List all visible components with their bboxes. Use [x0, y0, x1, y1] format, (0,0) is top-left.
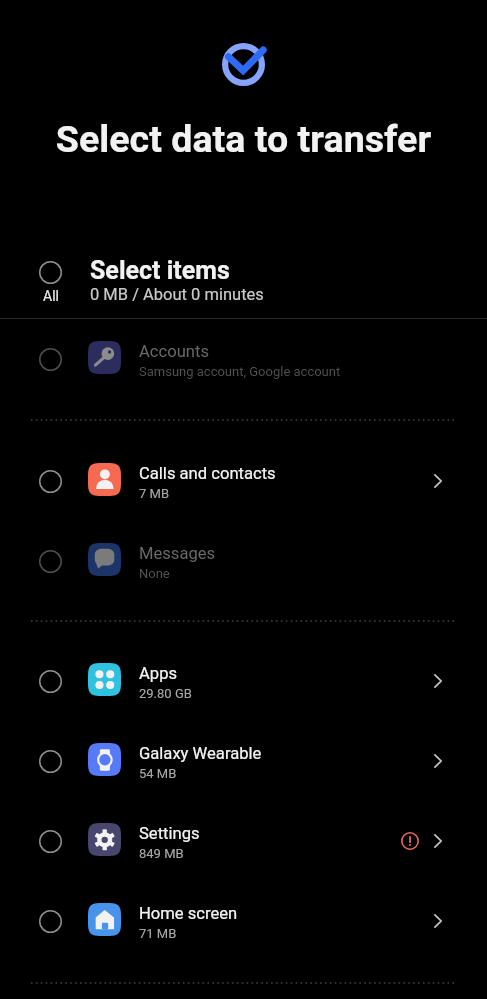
staticText: 29.80 GB — [139, 686, 192, 701]
other: Select Accounts — [39, 348, 62, 371]
button[interactable]: Select Apps — [0, 641, 487, 721]
staticText: Apps — [139, 664, 178, 683]
other: Open details — [427, 910, 449, 932]
staticText: 54 MB — [139, 766, 177, 781]
other: Select Apps — [39, 670, 62, 693]
staticText: All — [43, 288, 59, 304]
other: Select Messages — [39, 550, 62, 573]
staticText: Calls and contacts — [139, 464, 276, 483]
button[interactable]: Select Settings — [0, 801, 487, 881]
other: Open details — [427, 470, 449, 492]
staticText: 0 MB / About 0 minutes — [90, 285, 264, 304]
staticText: 7 MB — [139, 486, 169, 501]
staticText: Settings — [139, 824, 200, 843]
other: Open details — [427, 750, 449, 772]
other: Select Calls and contacts — [39, 470, 62, 493]
staticText: Galaxy Wearable — [139, 744, 262, 763]
other: Select all items — [39, 261, 62, 284]
button[interactable]: Select Accounts — [0, 319, 487, 399]
other: Open details — [427, 670, 449, 692]
button[interactable]: Select all items — [0, 261, 487, 318]
staticText: Select items — [90, 256, 230, 285]
button[interactable]: Select Messages — [0, 521, 487, 601]
staticText: Samsung account, Google account — [139, 364, 341, 379]
other: Select Galaxy Wearable — [39, 750, 62, 773]
button[interactable]: Select Galaxy Wearable — [0, 721, 487, 801]
staticText: Home screen — [139, 904, 238, 923]
button[interactable]: Select Calls and contacts — [0, 441, 487, 521]
other: Open details — [427, 830, 449, 852]
button[interactable]: Select Home screen — [0, 881, 487, 961]
staticText: None — [139, 566, 170, 581]
staticText: 849 MB — [139, 846, 184, 861]
other: Select Settings — [39, 830, 62, 853]
staticText: Select data to transfer — [0, 117, 487, 161]
other: Select Home screen — [39, 910, 62, 933]
staticText: Accounts — [139, 342, 209, 361]
staticText: 71 MB — [139, 926, 177, 941]
other: Warning — [401, 832, 419, 850]
staticText: Messages — [139, 544, 216, 563]
